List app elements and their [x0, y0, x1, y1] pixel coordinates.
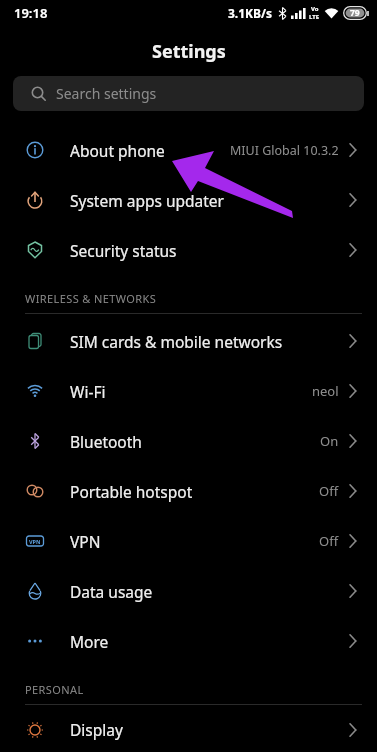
- button[interactable]: Data usage: [0, 566, 377, 616]
- button[interactable]: About phone: [0, 125, 377, 175]
- staticText: On: [320, 432, 339, 450]
- button[interactable]: SIM cards & mobile networks: [0, 316, 377, 366]
- button[interactable]: Wi-Fi: [0, 366, 377, 416]
- staticText: Settings: [152, 39, 226, 64]
- staticText: neol: [312, 382, 339, 400]
- staticText: Wi-Fi: [70, 381, 106, 402]
- button[interactable]: Bluetooth: [0, 416, 377, 466]
- staticText: MIUI Global 10.3.2: [230, 142, 339, 159]
- button[interactable]: Security status: [0, 225, 377, 275]
- staticText: WIRELESS & NETWORKS: [25, 291, 157, 306]
- button[interactable]: More: [0, 616, 377, 666]
- staticText: Vo: [311, 5, 319, 13]
- staticText: 3.1KB/s: [228, 5, 273, 21]
- staticText: 79: [350, 7, 360, 19]
- staticText: VPN: [70, 531, 101, 552]
- button[interactable]: VPN: [0, 516, 377, 566]
- staticText: Off: [319, 532, 339, 550]
- button[interactable]: System apps updater: [0, 175, 377, 225]
- staticText: SIM cards & mobile networks: [70, 331, 283, 352]
- button[interactable]: Display: [0, 707, 377, 752]
- staticText: System apps updater: [70, 190, 224, 211]
- staticText: Portable hotspot: [70, 481, 193, 502]
- staticText: VPN: [29, 538, 41, 545]
- staticText: 19:18: [14, 4, 48, 22]
- button[interactable]: Search settings: [13, 76, 364, 111]
- staticText: Bluetooth: [70, 431, 142, 452]
- staticText: Off: [319, 482, 339, 500]
- staticText: Display: [70, 719, 123, 740]
- staticText: Security status: [70, 240, 177, 261]
- staticText: More: [70, 631, 109, 652]
- staticText: PERSONAL: [25, 682, 84, 697]
- staticText: LTE: [309, 13, 320, 21]
- staticText: Data usage: [70, 581, 153, 602]
- staticText: About phone: [70, 140, 165, 161]
- staticText: Search settings: [56, 84, 157, 103]
- button[interactable]: Portable hotspot: [0, 466, 377, 516]
